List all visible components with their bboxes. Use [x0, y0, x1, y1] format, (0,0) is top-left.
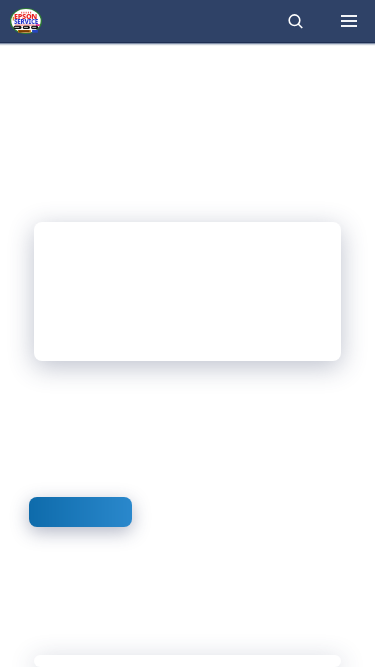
button[interactable]: [29, 497, 132, 527]
button[interactable]: Epson Service Home: [10, 8, 42, 34]
button[interactable]: Menu: [332, 4, 366, 38]
staticText: SERVICE: [14, 17, 38, 26]
staticText: EPSON: [14, 11, 38, 21]
button[interactable]: Search: [279, 4, 313, 38]
